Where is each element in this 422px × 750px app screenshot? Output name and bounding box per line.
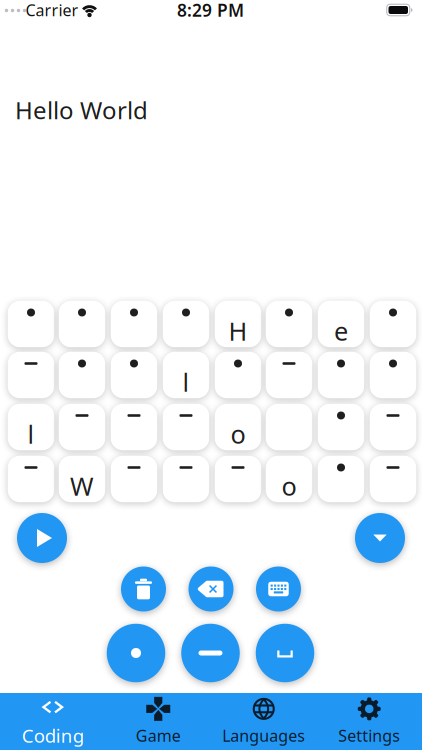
button[interactable]: Collapse keyboard [355,513,405,563]
button[interactable]: Game [105,693,211,750]
button[interactable]: Settings [316,693,422,750]
staticText: e [334,314,348,348]
button[interactable]: Delete all [121,566,166,611]
staticText: Coding [22,723,84,748]
staticText: W [70,469,94,503]
button[interactable]: Keyboard [256,566,301,611]
staticText: l [27,417,34,451]
staticText: H [228,314,247,348]
staticText: o [230,417,245,451]
staticText: Settings [338,725,400,746]
staticText: o [281,469,296,503]
button[interactable]: Play [17,513,67,563]
staticText: Carrier [25,0,78,21]
staticText: 8:29 PM [177,0,244,21]
staticText: Game [136,725,181,746]
button[interactable]: Space [256,624,314,682]
staticText: Languages [222,725,305,746]
button[interactable]: Dash [181,624,240,682]
button[interactable]: Dot [107,624,165,682]
button[interactable]: Coding [0,693,105,750]
button[interactable]: Languages [211,693,316,750]
staticText: Hello World [15,94,148,126]
button[interactable]: Backspace [188,566,233,611]
staticText: l [182,365,189,399]
